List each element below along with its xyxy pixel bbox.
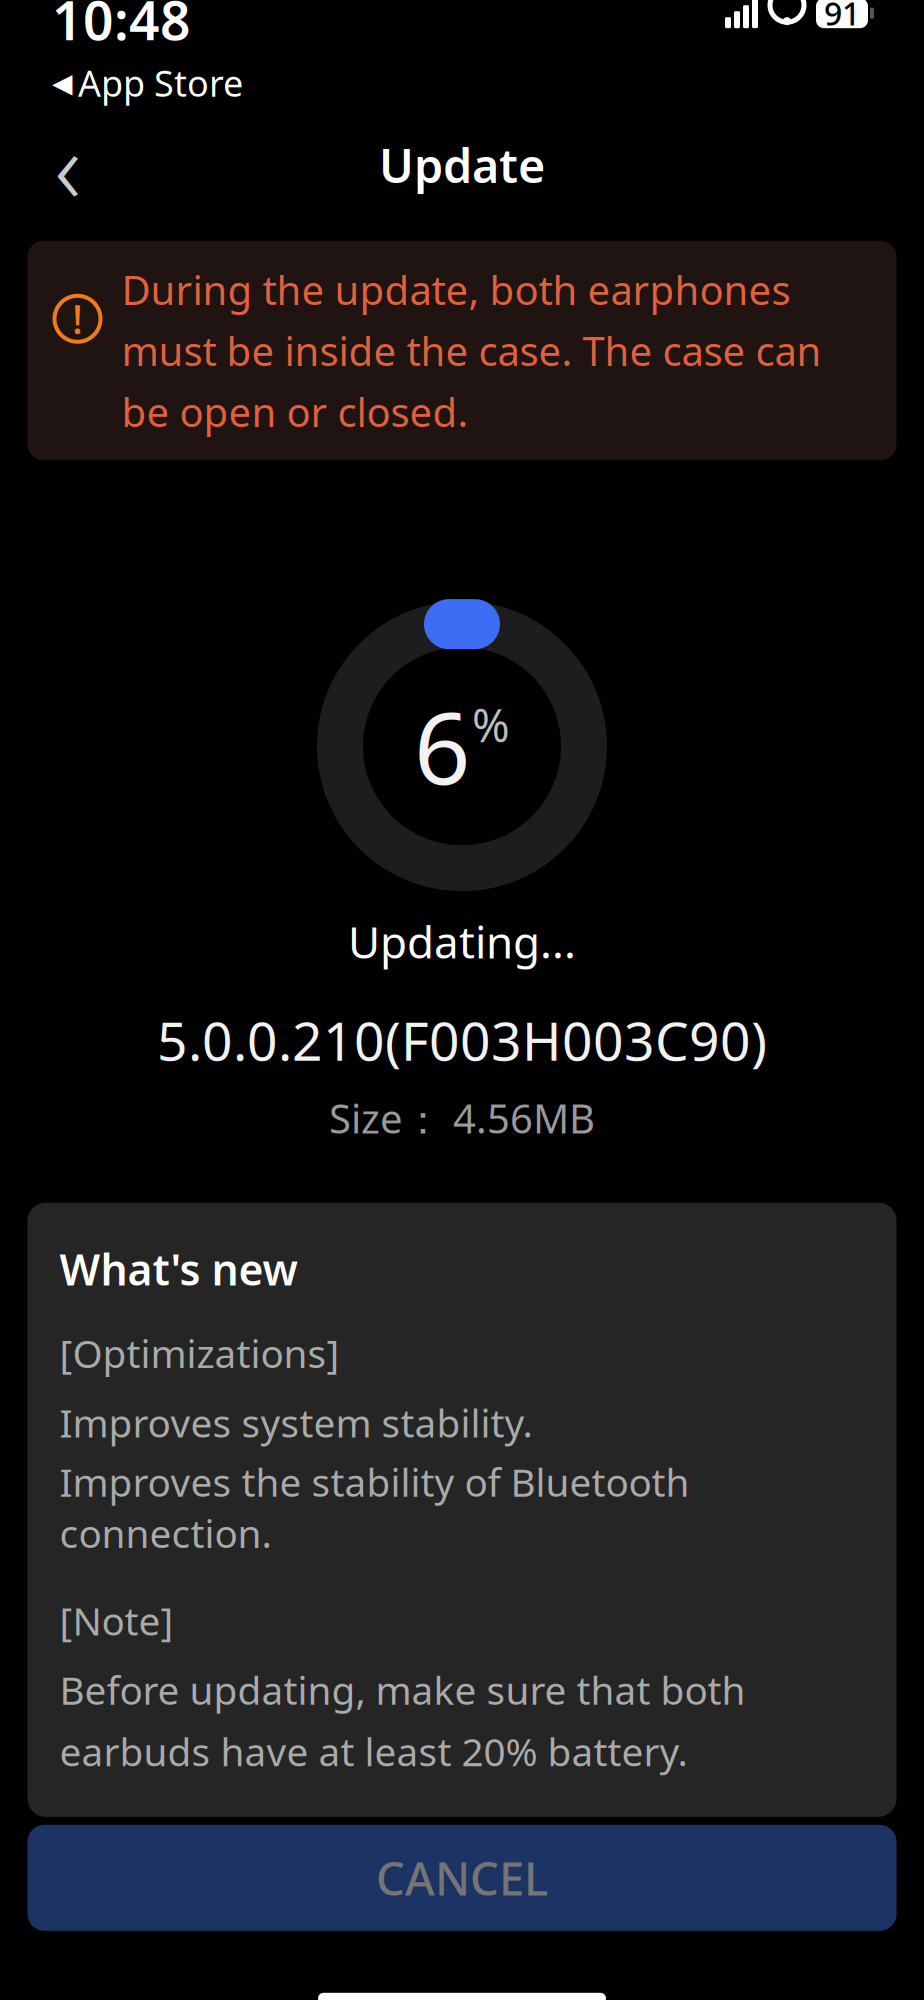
staticText: Before updating, make sure that both ear… [59,1664,745,1777]
staticText: Updating... [348,912,576,971]
staticText: App Store [78,59,243,107]
staticText: [Note] [59,1595,173,1646]
staticText: 5.0.0.210(F003H003C90) [157,1005,767,1075]
staticText: Improves system stability. [59,1397,532,1448]
button[interactable]: CANCEL [27,1825,896,1931]
staticText: 91 [824,0,860,34]
staticText: ‹ [54,97,81,232]
staticText: Size： 4.56MB [329,1091,595,1145]
staticText: What's new [59,1241,297,1297]
staticText: CANCEL [376,1848,548,1908]
staticText: [Optimizations] [59,1327,339,1379]
staticText: ! [72,292,83,345]
staticText: 10:48 [52,0,191,55]
staticText: ◀ [52,68,73,98]
staticText: Improves the stability of Bluetooth conn… [59,1456,689,1559]
button[interactable]: Back [28,129,108,201]
staticText: % [472,695,510,755]
staticText: During the update, both earphones must b… [121,263,821,438]
staticText: 6 [414,681,470,812]
staticText: Update [379,134,545,196]
